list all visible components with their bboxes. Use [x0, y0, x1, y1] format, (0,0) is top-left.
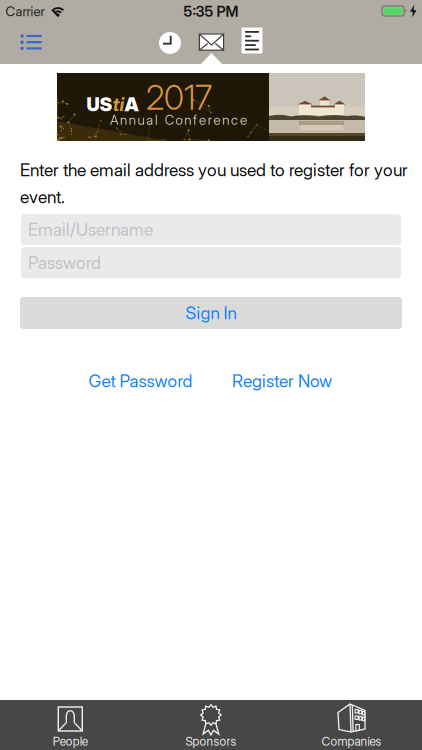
- button[interactable]: [158, 31, 182, 55]
- button[interactable]: [241, 27, 262, 53]
- button[interactable]: [198, 33, 224, 51]
- button[interactable]: Get Password: [88, 371, 192, 391]
- button[interactable]: People: [0, 700, 141, 750]
- button[interactable]: Password: [21, 247, 401, 278]
- button[interactable]: Sign In: [20, 297, 402, 329]
- button[interactable]: Sponsors: [141, 700, 281, 750]
- staticText: Enter the email address you used to regi…: [20, 160, 408, 207]
- staticText: A: [124, 93, 138, 115]
- staticText: Companies: [321, 734, 381, 749]
- staticText: Register Now: [232, 371, 332, 391]
- staticText: Sign In: [185, 303, 236, 323]
- button[interactable]: [13, 27, 49, 57]
- staticText: People: [53, 734, 88, 749]
- button[interactable]: Companies: [281, 700, 422, 750]
- button[interactable]: Register Now: [232, 371, 332, 391]
- staticText: 2017: [146, 78, 212, 117]
- staticText: Carrier: [5, 4, 44, 19]
- staticText: US: [86, 93, 112, 115]
- staticText: Get Password: [88, 371, 192, 391]
- staticText: Sponsors: [185, 734, 236, 749]
- staticText: Email/Username: [28, 219, 153, 240]
- staticText: Password: [28, 252, 101, 273]
- staticText: Annual Conference: [110, 112, 247, 128]
- staticText: ti: [112, 93, 124, 115]
- staticText: 5:35 PM: [183, 3, 238, 20]
- button[interactable]: Email/Username: [21, 214, 401, 245]
